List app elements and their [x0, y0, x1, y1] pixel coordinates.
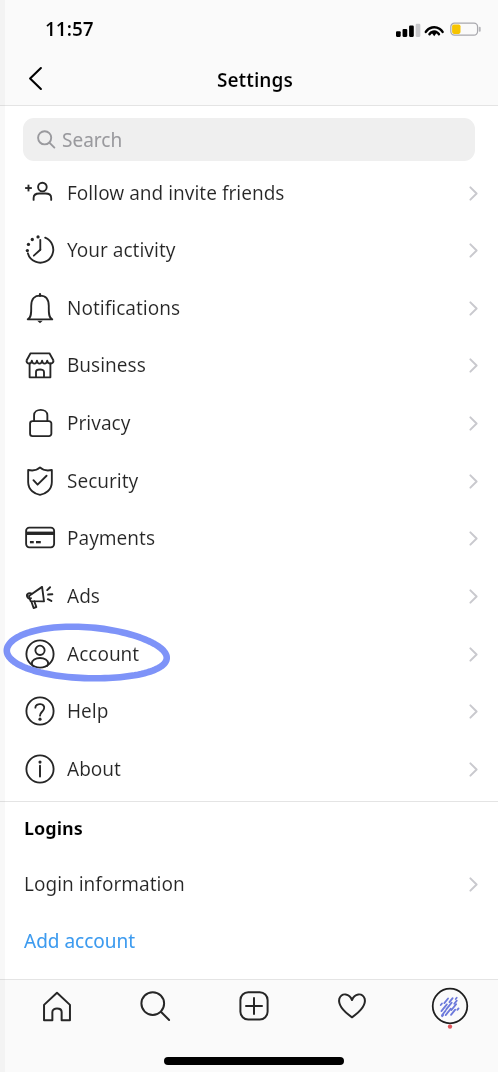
- button[interactable]: Profile: [421, 980, 479, 1032]
- staticText: Business: [67, 352, 469, 378]
- button[interactable]: Security: [0, 452, 498, 510]
- staticText: Ads: [67, 583, 469, 609]
- button[interactable]: Your activity: [0, 221, 498, 279]
- staticText: Logins: [24, 816, 83, 841]
- button[interactable]: Account: [0, 625, 498, 683]
- staticText: Help: [67, 698, 469, 724]
- button[interactable]: Follow and invite friends: [0, 164, 498, 222]
- staticText: Payments: [67, 525, 469, 551]
- staticText: About: [67, 756, 469, 782]
- button[interactable]: Add account: [0, 913, 498, 969]
- button[interactable]: Payments: [0, 509, 498, 567]
- staticText: Security: [67, 468, 469, 494]
- staticText: Account: [67, 641, 469, 667]
- button[interactable]: Notifications: [0, 279, 498, 337]
- button[interactable]: Back: [12, 57, 58, 103]
- staticText: 11:57: [45, 16, 94, 42]
- button[interactable]: Search: [126, 980, 184, 1032]
- button[interactable]: Help: [0, 682, 498, 740]
- staticText: Settings: [217, 67, 293, 93]
- staticText: Add account: [24, 928, 136, 954]
- staticText: Search: [62, 127, 123, 153]
- staticText: Privacy: [67, 410, 469, 436]
- button[interactable]: Create: [225, 980, 283, 1032]
- button[interactable]: Ads: [0, 567, 498, 625]
- button[interactable]: Business: [0, 336, 498, 394]
- button[interactable]: Activity: [323, 979, 381, 1031]
- staticText: Notifications: [67, 295, 469, 321]
- staticText: Your activity: [67, 237, 469, 263]
- staticText: Login information: [24, 871, 469, 897]
- button[interactable]: Home: [28, 980, 86, 1032]
- button[interactable]: About: [0, 740, 498, 798]
- staticText: Follow and invite friends: [67, 180, 469, 206]
- button[interactable]: Search: [23, 118, 475, 161]
- button[interactable]: Privacy: [0, 394, 498, 452]
- button[interactable]: Login information: [0, 856, 498, 912]
